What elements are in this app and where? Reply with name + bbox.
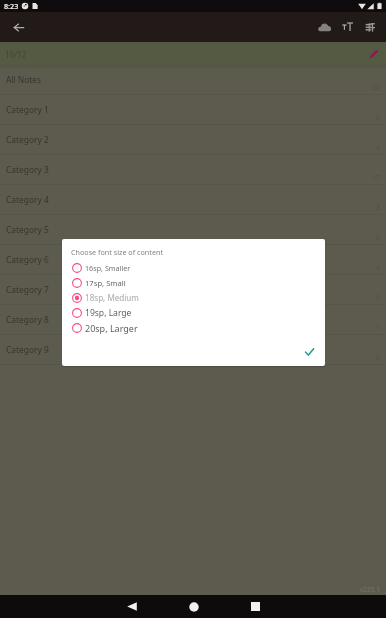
staticText: 20sp, Larger [85, 322, 138, 334]
staticText: 3 [376, 143, 380, 152]
staticText: 0 [376, 293, 380, 302]
button[interactable]: 20sp, Larger [62, 320, 325, 335]
staticText: Category 6 [6, 254, 49, 265]
button[interactable]: Edit [364, 44, 384, 64]
staticText: Category 5 [6, 224, 49, 235]
staticText: 17sp, Small [85, 278, 126, 288]
staticText: Category 8 [6, 314, 49, 325]
staticText: Category 1 [6, 104, 49, 115]
button[interactable]: 18sp, Medium [62, 290, 325, 305]
staticText: 0 [376, 113, 380, 122]
button[interactable]: Settings [358, 15, 382, 39]
staticText: Category 4 [6, 194, 49, 205]
button[interactable]: 17sp, Small [62, 275, 325, 290]
button[interactable]: Home [182, 595, 205, 618]
staticText: v225.1 [360, 585, 380, 594]
button[interactable]: All Notes [0, 66, 386, 95]
staticText: Category 9 [6, 344, 49, 355]
button[interactable]: Sync [312, 15, 336, 39]
button[interactable]: Font size [335, 15, 359, 39]
staticText: All Notes [6, 74, 42, 85]
staticText: Category 7 [6, 284, 49, 295]
button[interactable]: 16sp, Smaller [62, 260, 325, 275]
button[interactable]: 19sp, Large [62, 305, 325, 320]
staticText: 3 [376, 263, 380, 272]
staticText: 18sp, Medium [85, 292, 139, 303]
staticText: Category 3 [6, 164, 49, 175]
button[interactable]: Back [120, 595, 143, 618]
button[interactable]: Category 8 [0, 305, 386, 335]
staticText: 16sp, Smaller [85, 263, 131, 273]
staticText: 3 [376, 203, 380, 212]
staticText: Choose font size of content [71, 247, 163, 257]
staticText: 8:23 [4, 1, 19, 11]
staticText: 0 [376, 233, 380, 242]
button[interactable]: Category 6 [0, 245, 386, 275]
button[interactable]: Category 5 [0, 215, 386, 245]
button[interactable]: Category 7 [0, 275, 386, 305]
staticText: Category 2 [6, 134, 49, 145]
button[interactable]: Recents [244, 595, 267, 618]
button[interactable]: Category 9 [0, 335, 386, 365]
staticText: 38 [372, 83, 380, 92]
staticText: 0 [376, 353, 380, 362]
staticText: 19sp, Large [85, 307, 132, 319]
staticText: 10/12 [5, 49, 27, 60]
button[interactable]: Confirm [299, 342, 319, 362]
button[interactable]: Back [5, 14, 31, 40]
